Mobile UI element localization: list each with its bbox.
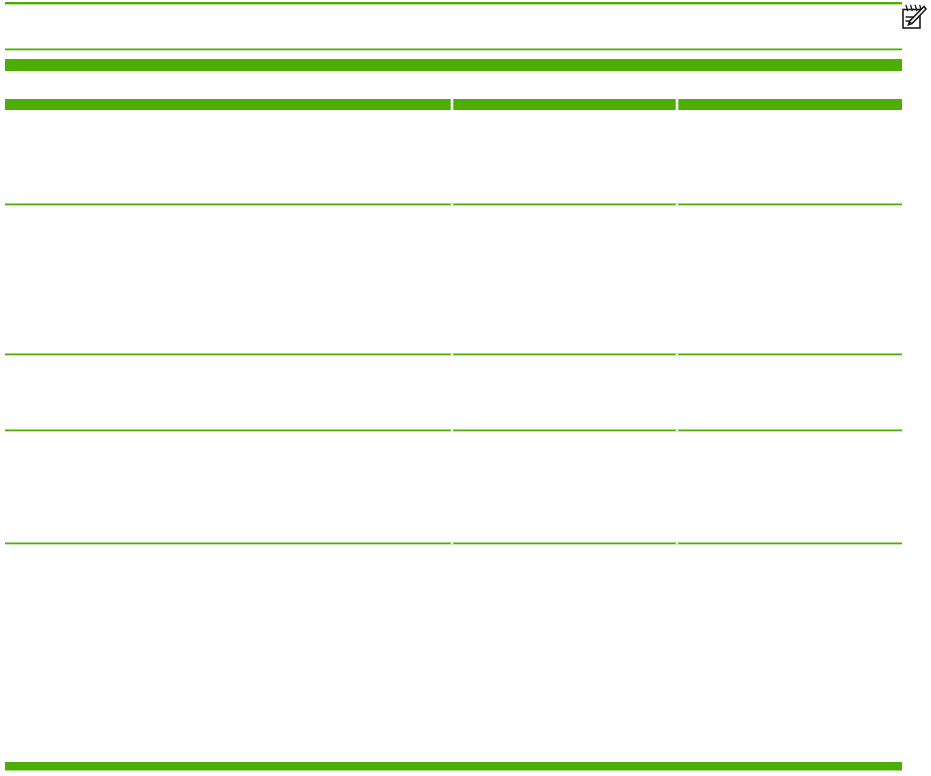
button[interactable]: Notes (897, 2, 927, 32)
